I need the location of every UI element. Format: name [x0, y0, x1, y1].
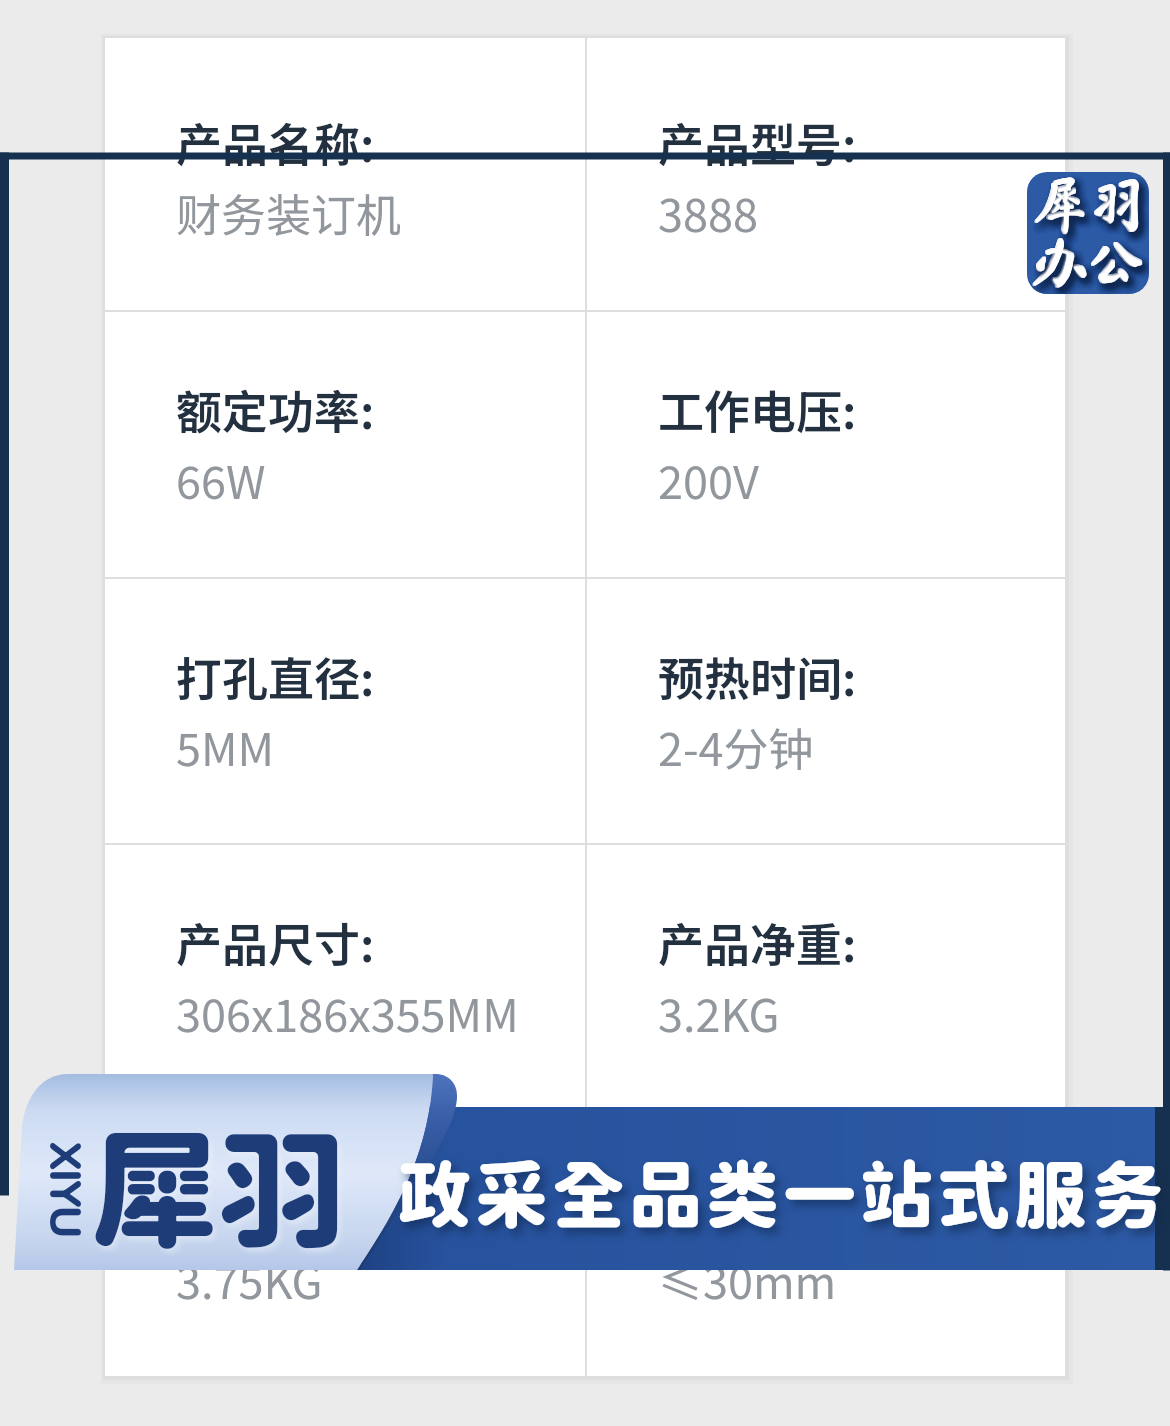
staticText: 办公 — [1032, 234, 1146, 291]
button[interactable]: 额定功率: 66W — [105, 310, 585, 577]
button[interactable]: 产品型号: 3888 — [587, 38, 1065, 310]
staticText: 2-4分钟 — [658, 714, 814, 779]
staticText: 200V — [658, 447, 759, 512]
staticText: 办公 — [1031, 234, 1145, 291]
staticText: 5MM — [176, 714, 275, 779]
staticText: 产品型号: — [658, 109, 857, 176]
staticText: 办公 — [1031, 233, 1145, 290]
staticText: 办公 — [1030, 233, 1144, 290]
button[interactable]: 3.75KG — [105, 1110, 585, 1376]
staticText: 产品净重: — [658, 909, 857, 976]
staticText: 办公 — [1032, 233, 1146, 290]
button[interactable]: 预热时间: 2-4分钟 — [587, 577, 1065, 843]
staticText: 犀羽 — [1032, 176, 1146, 233]
staticText: 3.75KG — [176, 1247, 323, 1312]
button[interactable]: 产品名称: 财务装订机 — [105, 38, 585, 310]
button[interactable]: 打孔直径: 5MM — [105, 577, 585, 843]
staticText: 306x186x355MM — [176, 980, 519, 1045]
staticText: 犀羽 — [90, 1113, 347, 1264]
staticText: XIYU — [41, 1141, 93, 1237]
staticText: 犀羽 — [1030, 175, 1144, 232]
button[interactable]: 工作电压: 200V — [587, 310, 1065, 577]
staticText: 犀羽 — [1031, 176, 1145, 233]
staticText: 财务装订机 — [176, 180, 402, 245]
staticText: 犀羽 — [1032, 177, 1146, 234]
staticText: 犀羽 — [1030, 177, 1144, 234]
staticText: 66W — [176, 447, 266, 512]
staticText: 政采全品类一站式服务 — [398, 1151, 1168, 1237]
staticText: 3888 — [658, 180, 758, 245]
button[interactable]: 产品尺寸: 306x186x355MM — [105, 843, 585, 1110]
staticText: 办公 — [1032, 232, 1146, 289]
staticText: 犀羽 — [1031, 175, 1145, 232]
staticText: 产品尺寸: — [176, 909, 375, 976]
staticText: 犀羽 — [1031, 177, 1145, 234]
staticText: 产品名称: — [176, 109, 375, 176]
staticText: 额定功率: — [176, 376, 375, 443]
button[interactable]: ≤30mm — [587, 1110, 1065, 1376]
staticText: ≤30mm — [658, 1247, 837, 1312]
staticText: 办公 — [1030, 232, 1144, 289]
staticText: 工作电压: — [658, 376, 857, 443]
staticText: 办公 — [1031, 232, 1145, 289]
staticText: 预热时间: — [658, 643, 857, 710]
staticText: 办公 — [1030, 234, 1144, 291]
staticText: 打孔直径: — [176, 643, 375, 710]
button[interactable]: 产品净重: 3.2KG — [587, 843, 1065, 1110]
staticText: 3.2KG — [658, 980, 780, 1045]
button[interactable]: 犀羽办公 brand logo — [1027, 172, 1149, 294]
staticText: 犀羽 — [1030, 176, 1144, 233]
staticText: 犀羽 — [1032, 175, 1146, 232]
